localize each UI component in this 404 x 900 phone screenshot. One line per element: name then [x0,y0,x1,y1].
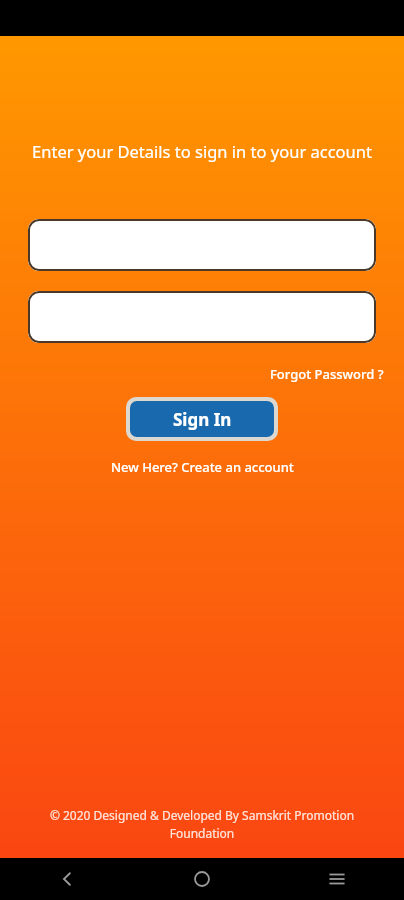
button[interactable] [28,291,376,343]
staticText: Forgot Password ? [270,365,384,383]
staticText: Sign In [173,408,232,431]
button[interactable]: Forgot Password ? [268,363,386,385]
button[interactable]: New Here? Create an account [107,456,298,478]
staticText: © 2020 Designed & Developed By Samskrit … [24,807,380,842]
button[interactable]: Home [134,858,269,900]
button[interactable]: Sign In [126,397,278,441]
button[interactable]: Back [0,858,134,900]
button[interactable] [28,219,376,271]
staticText: Enter your Details to sign in to your ac… [16,140,388,162]
staticText: New Here? Create an account [111,458,294,476]
button[interactable]: Recent apps [269,858,404,900]
